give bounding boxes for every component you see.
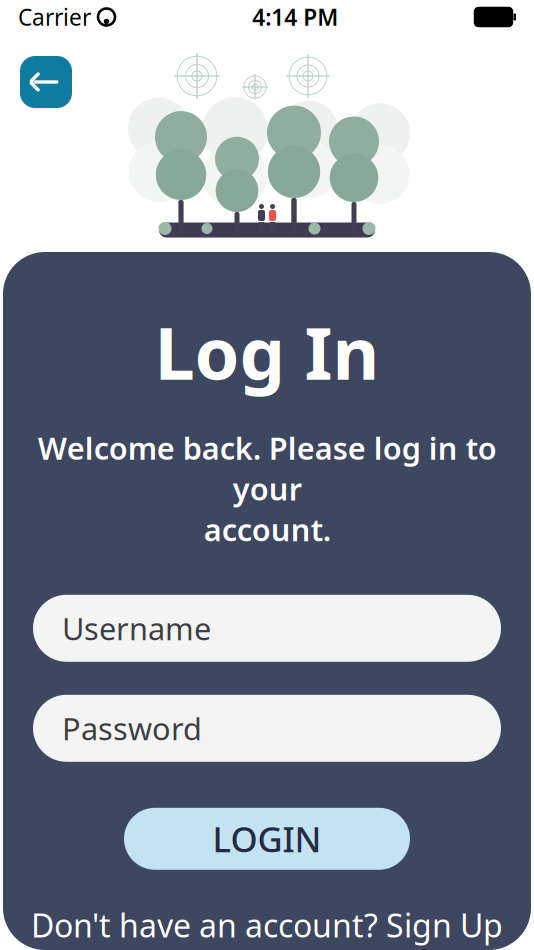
button[interactable]: Username — [33, 595, 501, 662]
staticText: Carrier — [18, 2, 91, 32]
button[interactable]: Password — [33, 695, 501, 762]
staticText: Log In — [154, 304, 379, 400]
staticText: Don't have an account? Sign Up — [31, 904, 503, 946]
button[interactable]: Back — [20, 56, 72, 108]
staticText: Welcome back. Please log in to your acco… — [37, 428, 496, 550]
staticText: Password — [62, 708, 202, 749]
staticText — [91, 2, 97, 32]
staticText: LOGIN — [212, 816, 321, 862]
staticText: Username — [62, 608, 211, 649]
staticText: 4:14 PM — [252, 2, 338, 32]
button[interactable]: Don't have an account? Sign Up — [21, 898, 513, 950]
button[interactable]: LOGIN — [124, 808, 410, 870]
